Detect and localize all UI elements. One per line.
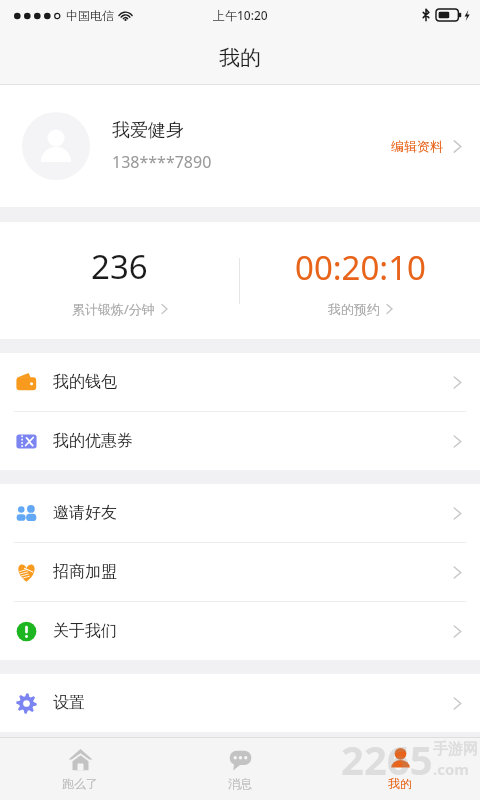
button[interactable]: 跑么了	[0, 738, 160, 800]
staticText: 我的钱包	[53, 372, 453, 392]
button[interactable]: 我的优惠券	[0, 412, 480, 470]
staticText: 我爱健身	[112, 119, 184, 142]
staticText: 我的预约	[328, 301, 380, 317]
button[interactable]: 消息	[160, 738, 320, 800]
staticText: 编辑资料	[391, 138, 443, 154]
button[interactable]: 我的	[320, 738, 480, 800]
staticText: 招商加盟	[53, 562, 453, 582]
staticText: 我的	[388, 776, 412, 791]
staticText: 00:20:10	[295, 245, 426, 290]
staticText: .com	[433, 759, 469, 779]
button[interactable]: 我的钱包	[0, 353, 480, 411]
staticText: 消息	[228, 776, 252, 791]
staticText: 设置	[53, 693, 453, 713]
button[interactable]: 我爱健身	[0, 85, 480, 207]
staticText: 上午10:20	[213, 7, 268, 23]
button[interactable]: 邀请好友	[0, 484, 480, 542]
button[interactable]: 关于我们	[0, 602, 480, 660]
staticText: 邀请好友	[53, 503, 453, 523]
staticText: 跑么了	[62, 776, 98, 791]
staticText: 中国电信	[66, 8, 114, 23]
staticText: 236	[91, 244, 148, 289]
staticText: 我的	[219, 45, 261, 71]
staticText: 关于我们	[53, 621, 453, 641]
staticText: 138****7890	[112, 151, 212, 173]
staticText: 我的优惠券	[53, 431, 453, 451]
button[interactable]: 设置	[0, 674, 480, 732]
staticText: 手游网	[433, 740, 478, 759]
staticText: 2265	[341, 732, 433, 786]
staticText: 累计锻炼/分钟	[72, 300, 155, 318]
button[interactable]: 招商加盟	[0, 543, 480, 601]
button[interactable]: 236	[0, 222, 239, 339]
button[interactable]: 00:20:10	[240, 222, 480, 339]
